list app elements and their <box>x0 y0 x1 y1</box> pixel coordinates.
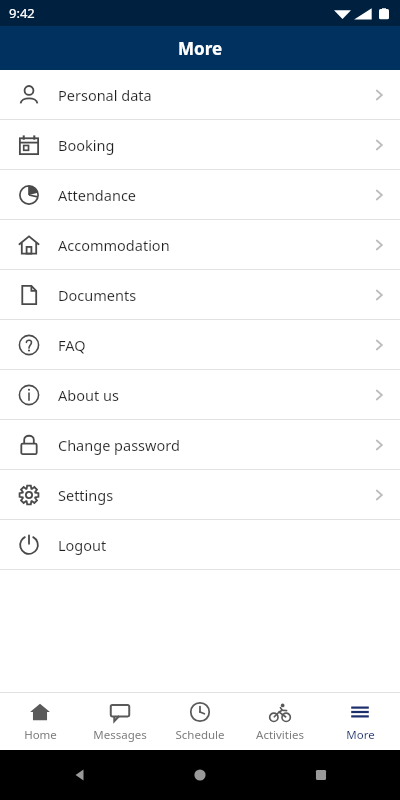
button[interactable]: Schedule <box>160 693 240 750</box>
staticText: Schedule <box>175 727 225 743</box>
staticText: Personal data <box>58 85 358 105</box>
button[interactable]: Attendance <box>0 170 400 220</box>
button[interactable]: Documents <box>0 270 400 320</box>
staticText: Change password <box>58 435 358 455</box>
staticText: Activities <box>256 727 304 743</box>
staticText: Accommodation <box>58 235 358 255</box>
button[interactable]: Back <box>72 767 88 783</box>
button[interactable]: More <box>320 693 400 750</box>
button[interactable]: Home <box>193 768 207 782</box>
button[interactable]: Recent apps <box>314 768 328 782</box>
staticText: Documents <box>58 285 358 305</box>
staticText: More <box>178 37 223 60</box>
button[interactable]: Activities <box>240 693 320 750</box>
button[interactable]: About us <box>0 370 400 420</box>
staticText: FAQ <box>58 335 358 355</box>
button[interactable]: Change password <box>0 420 400 470</box>
button[interactable]: Accommodation <box>0 220 400 270</box>
button[interactable]: Home <box>0 693 80 750</box>
button[interactable]: FAQ <box>0 320 400 370</box>
button[interactable]: Logout <box>0 520 400 570</box>
staticText: Settings <box>58 485 358 505</box>
staticText: Logout <box>58 535 358 555</box>
staticText: Home <box>24 727 57 743</box>
button[interactable]: Settings <box>0 470 400 520</box>
button[interactable]: Messages <box>80 693 160 750</box>
button[interactable]: Booking <box>0 120 400 170</box>
staticText: About us <box>58 385 358 405</box>
staticText: Booking <box>58 135 358 155</box>
staticText: More <box>346 727 375 743</box>
staticText: Messages <box>93 727 147 743</box>
staticText: 9:42 <box>9 4 35 22</box>
button[interactable]: Personal data <box>0 70 400 120</box>
staticText: Attendance <box>58 185 358 205</box>
